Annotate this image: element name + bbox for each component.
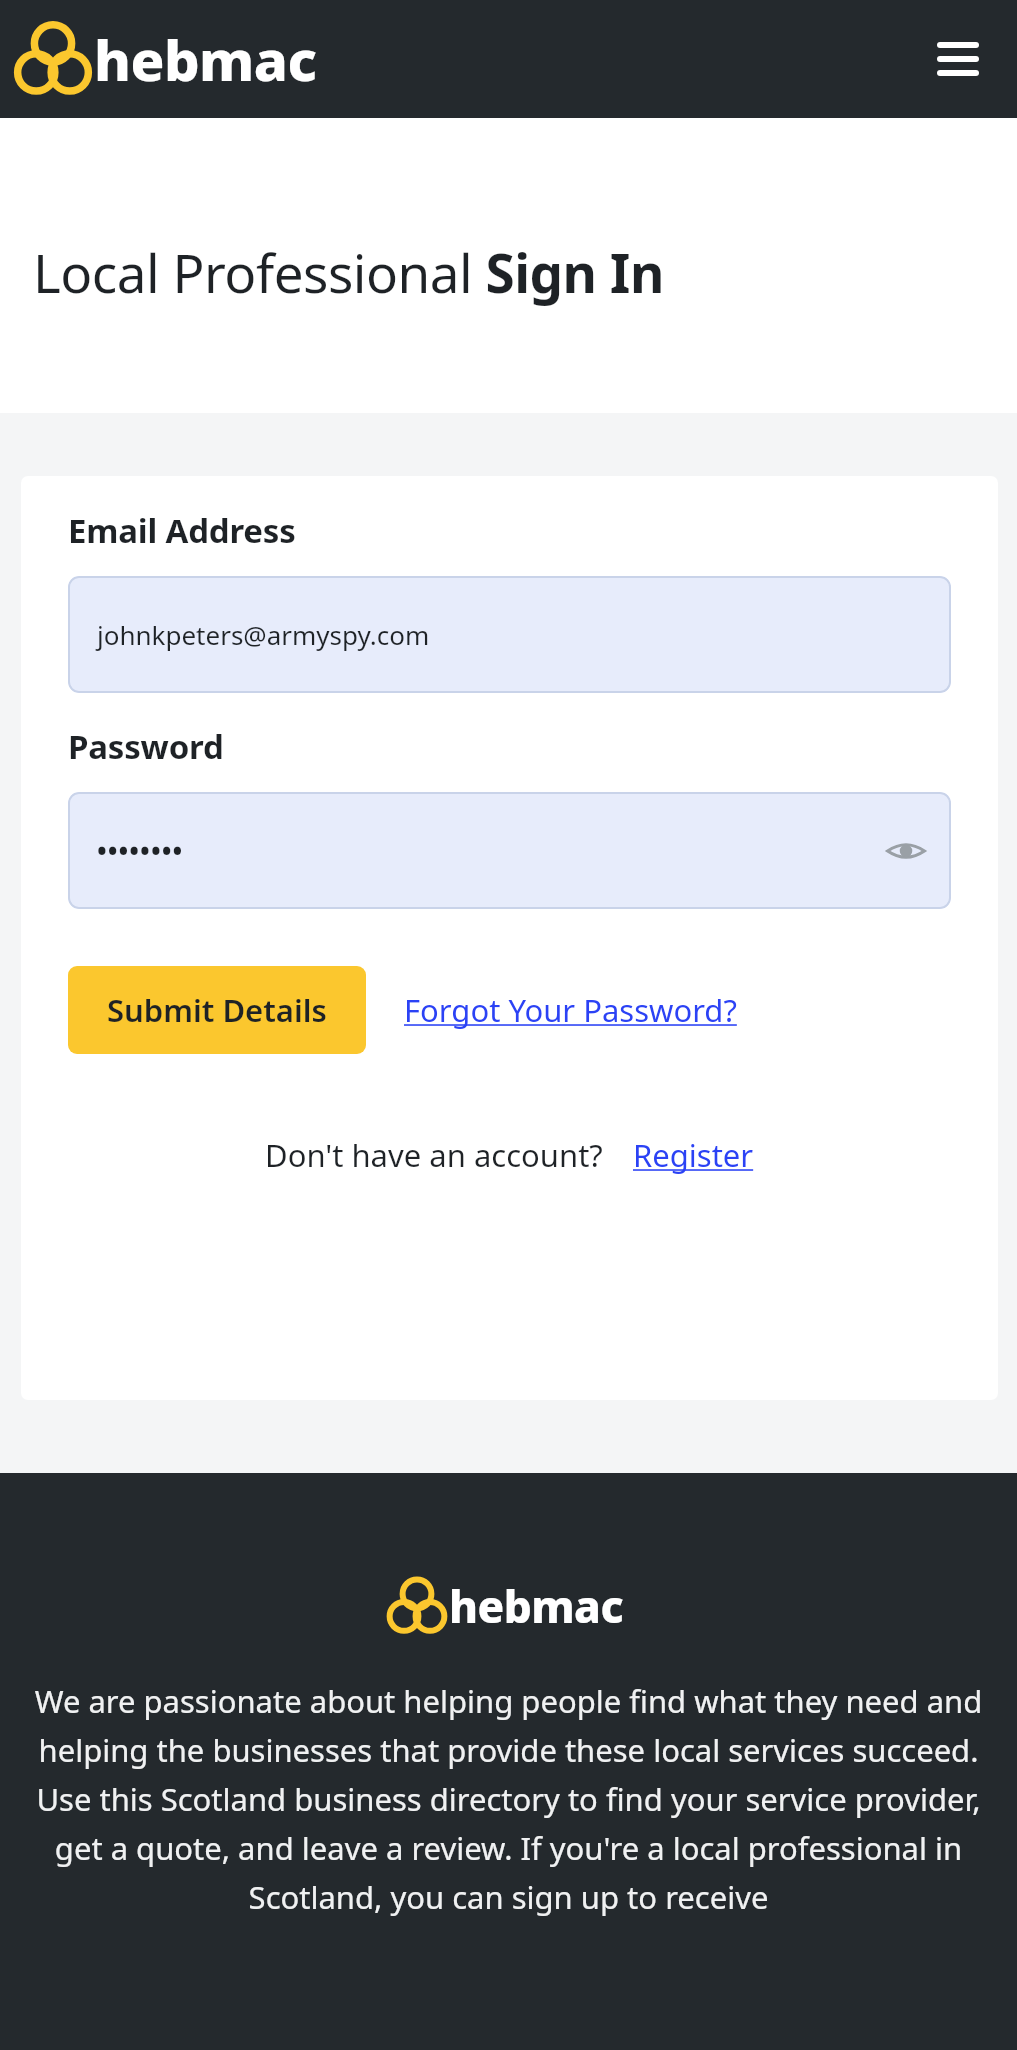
staticText: johnkpeters@armyspy.com	[97, 617, 430, 652]
button[interactable]: Forgot Your Password?	[404, 989, 737, 1031]
staticText: hebmac	[449, 1576, 624, 1636]
button[interactable]: Submit Details	[68, 966, 366, 1054]
staticText: Register	[633, 1134, 754, 1176]
staticText: Password	[68, 724, 224, 769]
staticText: We are passionate about helping people f…	[28, 1680, 989, 1919]
button[interactable]: hebmac	[22, 21, 317, 97]
staticText: Local Professional Sign In	[33, 236, 664, 308]
staticText: Don't have an account?	[265, 1134, 603, 1176]
button[interactable]: Show password	[880, 825, 932, 877]
button[interactable]: Register	[633, 1134, 754, 1176]
button[interactable]: hebmac	[393, 1576, 624, 1636]
staticText: Submit Details	[107, 989, 327, 1031]
button[interactable]: ••••••••	[68, 792, 951, 909]
button[interactable]: johnkpeters@armyspy.com	[68, 576, 951, 693]
staticText: ••••••••	[97, 833, 184, 868]
staticText: Forgot Your Password?	[404, 989, 737, 1031]
button[interactable]: Open menu	[925, 26, 991, 92]
staticText: Email Address	[68, 508, 296, 553]
staticText: hebmac	[94, 21, 317, 97]
